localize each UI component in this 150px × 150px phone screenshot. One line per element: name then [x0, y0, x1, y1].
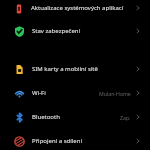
other: Stav zabezpečení: [14, 26, 25, 37]
other: Připojení a sdílení: [14, 136, 25, 147]
staticText: Stav zabezpečení: [32, 27, 135, 35]
button[interactable]: Wi-Fi: [0, 84, 150, 102]
other: SIM karty a mobilní sítě: [14, 64, 25, 75]
button[interactable]: Stav zabezpečení: [0, 22, 150, 40]
staticText: Aktualizace systémových aplikací: [31, 4, 135, 12]
staticText: Bluetooth: [32, 113, 120, 121]
staticText: Zap.: [120, 114, 131, 121]
staticText: Připojení a sdílení: [32, 137, 135, 145]
button[interactable]: Aktualizace systémových aplikací: [0, 0, 150, 16]
button[interactable]: Připojení a sdílení: [0, 132, 150, 150]
other: Aktualizace systémových aplikací: [14, 4, 24, 14]
staticText: SIM karty a mobilní sítě: [32, 65, 135, 73]
button[interactable]: Bluetooth: [0, 108, 150, 126]
staticText: Wi-Fi: [32, 89, 99, 97]
other: Bluetooth: [14, 112, 25, 123]
other: Wi-Fi: [14, 88, 25, 99]
button[interactable]: SIM karty a mobilní sítě: [0, 60, 150, 78]
staticText: Mulan-Home: [99, 90, 131, 97]
